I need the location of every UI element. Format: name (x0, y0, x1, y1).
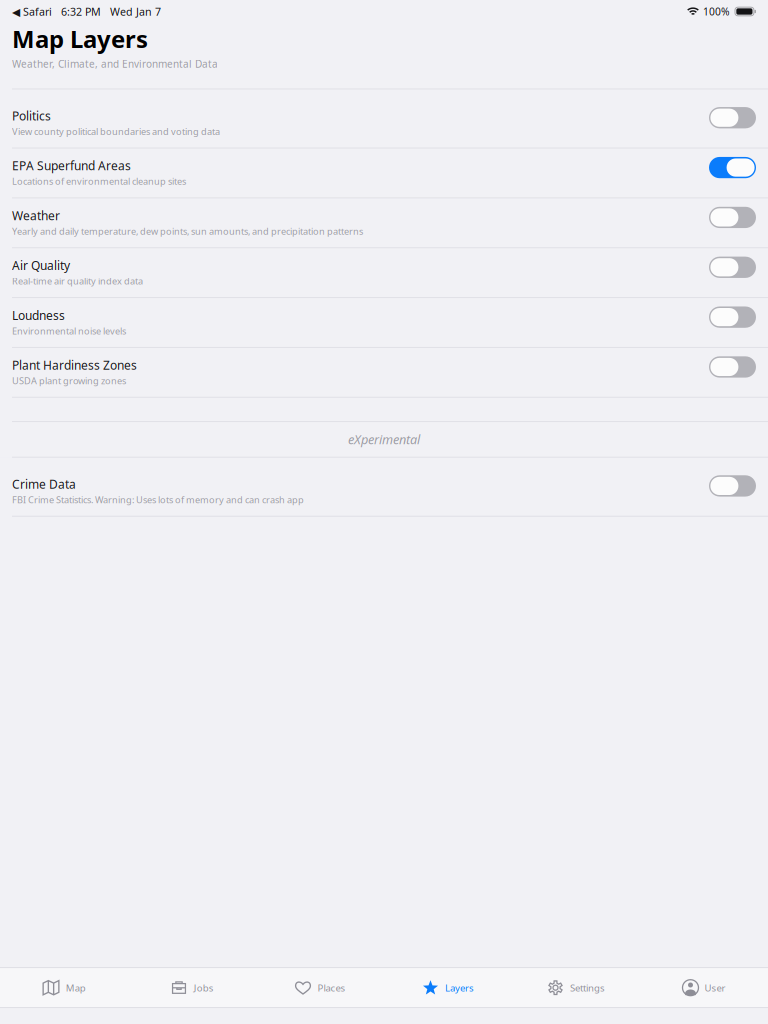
staticText: Places (317, 981, 345, 994)
button[interactable]: Plant Hardiness Zones (0, 348, 768, 398)
staticText: View county political boundaries and vot… (12, 125, 220, 137)
button[interactable]: Loudness (0, 298, 768, 348)
staticText: User (704, 981, 725, 994)
button[interactable]: Map (0, 968, 128, 1007)
staticText: Map (66, 981, 86, 994)
staticText: Yearly and daily temperature, dew points… (12, 225, 363, 237)
button[interactable]: Politics (0, 89, 768, 148)
button[interactable]: EPA Superfund Areas (0, 148, 768, 198)
staticText: Politics (12, 108, 51, 124)
button[interactable]: Crime Data (0, 458, 768, 517)
staticText: USDA plant growing zones (12, 375, 126, 387)
button[interactable]: User (640, 968, 768, 1007)
staticText: ◀ Safari 6:32 PM Wed Jan 7 (12, 4, 161, 19)
staticText: Crime Data (12, 476, 76, 492)
staticText: Weather, Climate, and Environmental Data (12, 57, 218, 70)
staticText: 100% (703, 5, 730, 18)
staticText: Layers (445, 981, 474, 994)
staticText: Settings (570, 981, 605, 994)
button[interactable]: Jobs (128, 968, 256, 1007)
staticText: Real-time air quality index data (12, 275, 143, 287)
button[interactable]: Layers (384, 968, 512, 1007)
button[interactable]: Air Quality (0, 248, 768, 298)
staticText: Environmental noise levels (12, 325, 126, 337)
staticText: Locations of environmental cleanup sites (12, 175, 186, 187)
staticText: Map Layers (12, 23, 148, 55)
staticText: Loudness (12, 307, 65, 323)
button[interactable]: Weather (0, 198, 768, 248)
staticText: Plant Hardiness Zones (12, 357, 137, 373)
button[interactable]: Places (256, 968, 384, 1007)
staticText: Air Quality (12, 257, 70, 273)
staticText: Weather (12, 208, 60, 223)
staticText: eXperimental (348, 431, 420, 448)
staticText: EPA Superfund Areas (12, 158, 131, 174)
staticText: Jobs (194, 981, 214, 994)
staticText: FBI Crime Statistics. Warning: Uses lots… (12, 493, 304, 506)
button[interactable]: Settings (512, 968, 640, 1007)
